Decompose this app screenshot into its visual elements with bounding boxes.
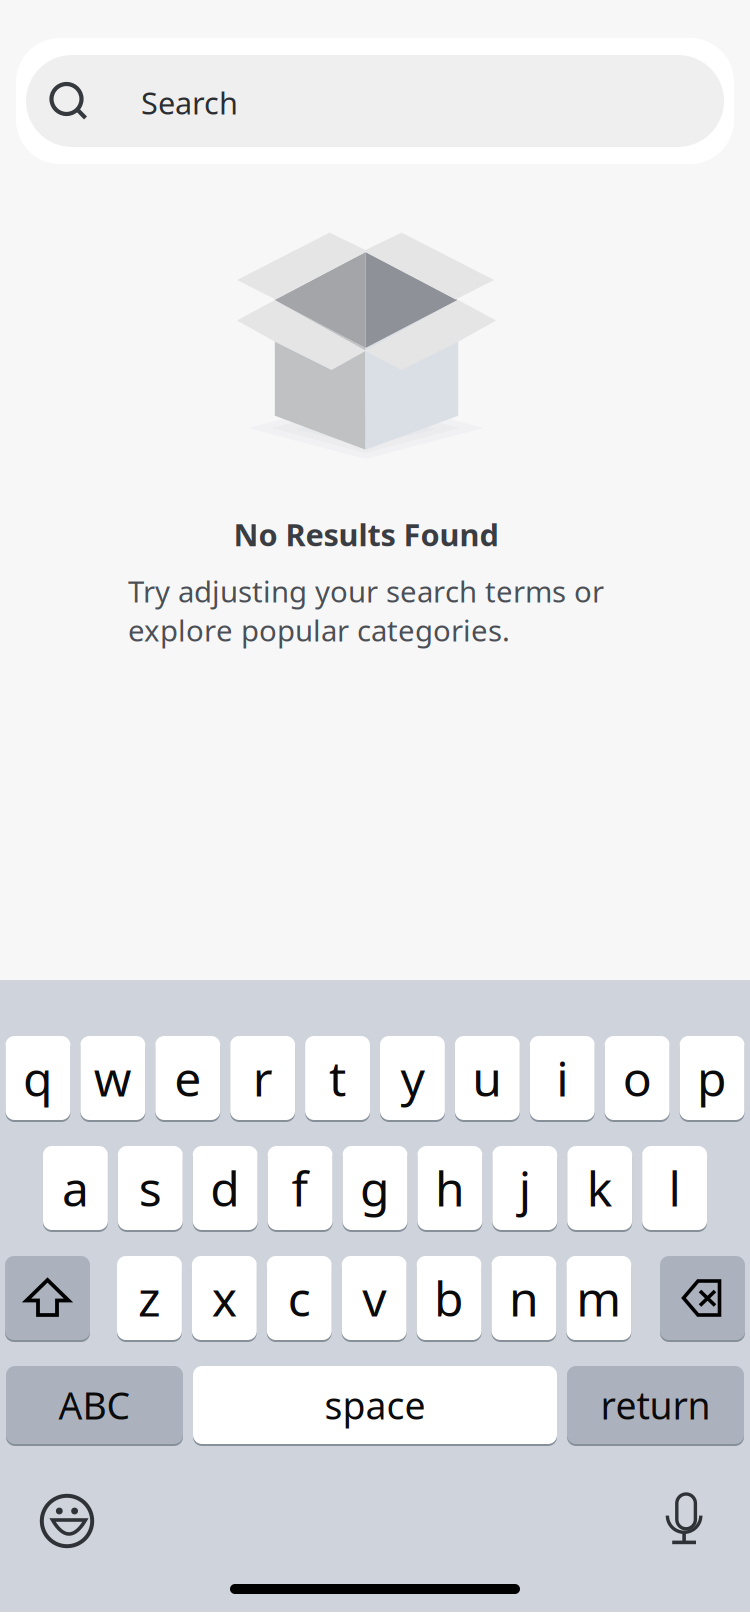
staticText: e (174, 1046, 201, 1110)
button[interactable]: y (380, 1035, 445, 1121)
button[interactable]: a (43, 1145, 108, 1231)
button[interactable]: u (455, 1035, 520, 1121)
staticText: y (400, 1046, 424, 1110)
button[interactable]: g (343, 1145, 407, 1231)
staticText: m (576, 1266, 621, 1330)
staticText: v (362, 1266, 386, 1330)
button[interactable]: Search (0, 0, 750, 164)
button[interactable]: space (193, 1365, 557, 1445)
staticText: l (669, 1156, 681, 1220)
button[interactable]: x (192, 1255, 257, 1341)
staticText: ABC (58, 1380, 130, 1430)
staticText: h (435, 1156, 465, 1220)
staticText: n (509, 1266, 539, 1330)
button[interactable]: d (193, 1145, 258, 1231)
button[interactable]: l (642, 1145, 707, 1231)
button[interactable]: f (268, 1145, 333, 1231)
button[interactable]: Shift (5, 1255, 90, 1341)
staticText: q (23, 1046, 53, 1110)
staticText: u (472, 1046, 502, 1110)
button[interactable]: b (417, 1255, 481, 1341)
staticText: a (62, 1156, 89, 1220)
staticText: Try adjusting your search terms or explo… (128, 572, 604, 650)
button[interactable]: return (567, 1365, 744, 1445)
staticText: space (324, 1380, 425, 1430)
staticText: r (253, 1046, 273, 1110)
button[interactable]: p (680, 1035, 744, 1121)
button[interactable]: m (566, 1255, 631, 1341)
button[interactable]: Emoji keyboard (36, 1490, 98, 1552)
button[interactable]: k (567, 1145, 632, 1231)
staticText: return (600, 1380, 710, 1430)
staticText: c (288, 1266, 311, 1330)
button[interactable]: Delete (660, 1255, 745, 1341)
staticText: p (697, 1046, 727, 1110)
staticText: z (138, 1266, 161, 1330)
button[interactable]: Dictation (652, 1490, 714, 1552)
staticText: g (360, 1156, 390, 1220)
button[interactable]: v (342, 1255, 407, 1341)
button[interactable]: z (117, 1255, 182, 1341)
staticText: No Results Found (233, 514, 498, 555)
staticText: x (212, 1266, 237, 1330)
button[interactable]: n (491, 1255, 556, 1341)
button[interactable]: e (155, 1035, 220, 1121)
button[interactable]: ABC (6, 1365, 183, 1445)
staticText: i (556, 1046, 568, 1110)
button[interactable]: w (80, 1035, 145, 1121)
staticText: j (519, 1156, 531, 1220)
staticText: w (94, 1046, 132, 1110)
button[interactable]: h (417, 1145, 482, 1231)
button[interactable]: j (492, 1145, 557, 1231)
staticText: f (292, 1156, 309, 1220)
button[interactable]: s (118, 1145, 183, 1231)
staticText: s (139, 1156, 162, 1220)
staticText: b (434, 1266, 464, 1330)
button[interactable]: o (605, 1035, 670, 1121)
button[interactable]: i (530, 1035, 595, 1121)
staticText: o (623, 1046, 652, 1110)
button[interactable]: t (305, 1035, 370, 1121)
staticText: t (329, 1046, 346, 1110)
staticText: Search (141, 82, 238, 123)
button[interactable]: q (5, 1035, 70, 1121)
staticText: k (587, 1156, 613, 1220)
button[interactable]: r (230, 1035, 295, 1121)
button[interactable]: c (267, 1255, 332, 1341)
staticText: d (210, 1156, 240, 1220)
